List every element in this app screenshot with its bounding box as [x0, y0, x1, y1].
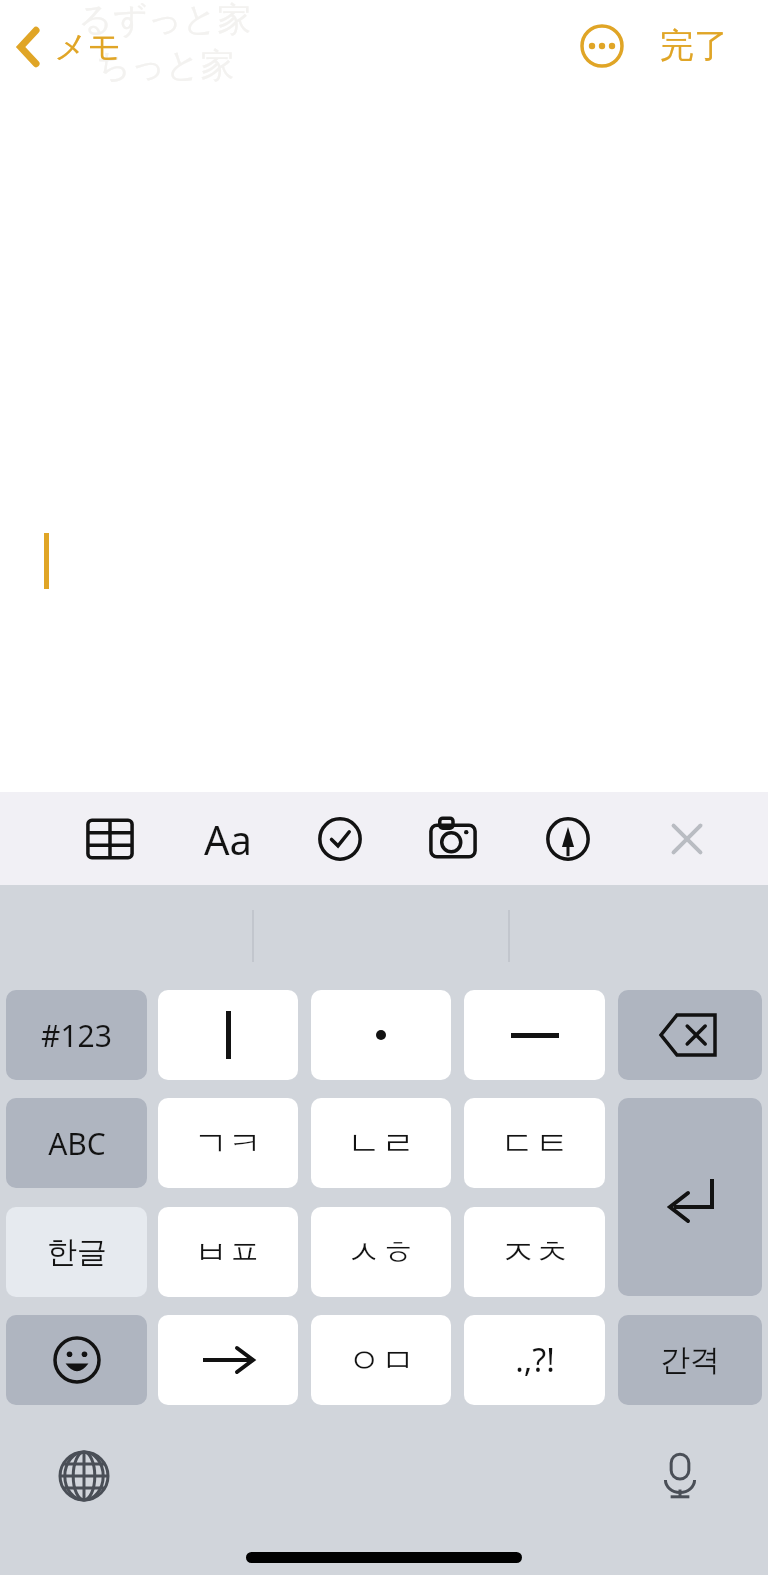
button[interactable]: ㄷㅌ	[464, 1098, 605, 1188]
button[interactable]: ㅅㅎ	[311, 1207, 451, 1297]
button[interactable]: Aa	[194, 809, 262, 869]
button[interactable]: Change keyboard	[48, 1440, 120, 1512]
staticText: ㅈㅊ	[501, 1231, 569, 1274]
staticText: メモ	[54, 26, 122, 68]
staticText: ㄴㄹ	[347, 1122, 415, 1165]
button[interactable]	[158, 1315, 298, 1405]
button[interactable]: ㅈㅊ	[464, 1207, 605, 1297]
staticText: #123	[41, 1015, 112, 1056]
button[interactable]: ㄱㅋ	[158, 1098, 298, 1188]
button[interactable]	[311, 990, 451, 1080]
staticText: ㄷㅌ	[501, 1122, 569, 1165]
staticText: ㅇㅁ	[347, 1339, 415, 1382]
staticText: ㄱㅋ	[194, 1122, 262, 1165]
button[interactable]: Emoji	[6, 1315, 147, 1405]
button[interactable]: 한글	[6, 1207, 147, 1297]
button[interactable]: メモ	[8, 16, 132, 78]
button[interactable]: Close keyboard	[653, 809, 721, 869]
button[interactable]: ABC	[6, 1098, 147, 1188]
button[interactable]: Markup	[534, 809, 602, 869]
staticText: 한글	[47, 1233, 107, 1271]
button[interactable]: Camera	[419, 809, 487, 869]
button[interactable]: Table	[76, 809, 144, 869]
button[interactable]: ㅂㅍ	[158, 1207, 298, 1297]
button[interactable]: Dictation	[644, 1440, 716, 1512]
button[interactable]: More options	[574, 18, 630, 74]
button[interactable]: ㅇㅁ	[311, 1315, 451, 1405]
staticText: 간격	[660, 1341, 720, 1379]
button[interactable]: 간격	[618, 1315, 762, 1405]
button[interactable]	[158, 990, 298, 1080]
button[interactable]: Return	[618, 1098, 762, 1296]
button[interactable]: #123	[6, 990, 147, 1080]
staticText: Aa	[204, 812, 252, 866]
button[interactable]: Format text	[194, 809, 262, 869]
button[interactable]	[464, 990, 605, 1080]
staticText: るずっと家	[78, 0, 252, 41]
button[interactable]: Delete	[618, 990, 762, 1080]
button[interactable]: .,?!	[464, 1315, 605, 1405]
button[interactable]: ㄴㄹ	[311, 1098, 451, 1188]
button[interactable]: 完了	[646, 14, 742, 77]
staticText: 完了	[660, 24, 728, 67]
staticText: ABC	[48, 1123, 106, 1164]
button[interactable]: Checklist	[306, 809, 374, 869]
staticText: .,?!	[515, 1338, 555, 1382]
staticText: ㅂㅍ	[194, 1231, 262, 1274]
staticText: ちっと家	[96, 44, 235, 87]
staticText: ㅅㅎ	[347, 1231, 415, 1274]
